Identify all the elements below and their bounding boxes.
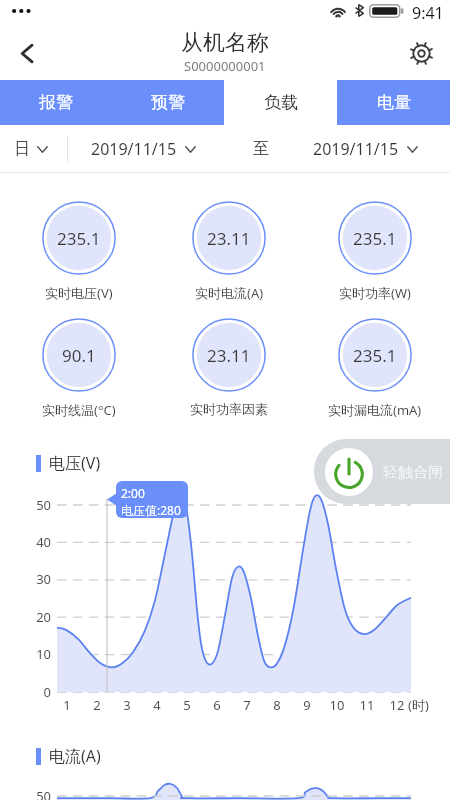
staticText: 实时功率(W) [339,284,411,302]
button[interactable]: Back [4,30,50,76]
staticText: 电压(V) [49,452,101,474]
staticText: 235.1 [57,227,101,250]
staticText: 50 [15,496,51,514]
staticText: 实时漏电流(mA) [328,401,422,419]
staticText: 0 [15,683,51,701]
staticText: 10 [327,696,347,714]
staticText: 11 [357,696,377,714]
staticText: 9:41 [412,2,444,24]
staticText: 1 [57,696,77,714]
staticText: 50 [15,787,51,800]
button[interactable]: Settings [400,32,442,74]
staticText: 从机名称 [181,29,269,57]
staticText: 电压值:280 [121,502,181,518]
staticText: 235.1 [353,344,397,367]
staticText: 报警 [39,92,73,113]
staticText: 2 [87,696,107,714]
staticText: 7 [237,696,257,714]
staticText: 日 [14,139,30,159]
staticText: 2:00 [121,485,145,501]
staticText: 6 [207,696,227,714]
button[interactable]: 轻触合闸 [314,439,450,504]
staticText: 3 [117,696,137,714]
staticText: 235.1 [353,227,397,250]
staticText: 电流(A) [49,745,101,767]
button[interactable]: 235.1 [338,201,412,275]
button[interactable]: 235.1 [42,201,116,275]
staticText: S0000000001 [184,57,266,75]
button[interactable]: 90.1 [42,318,116,392]
staticText: 5 [177,696,197,714]
staticText: (时) [408,696,429,714]
button[interactable]: 2019/11/15 [68,125,214,172]
button[interactable]: 电量 [337,80,450,125]
staticText: 12 [387,696,407,714]
staticText: 9 [297,696,317,714]
staticText: 40 [15,533,51,551]
staticText: 23.11 [207,344,251,367]
staticText: 电量 [377,92,411,113]
staticText: 23.11 [207,227,251,250]
staticText: 实时功率因素 [190,401,268,417]
staticText: 至 [253,139,269,159]
button[interactable]: 23.11 [192,201,266,275]
button[interactable]: 负载 [224,80,337,125]
staticText: 实时电压(V) [45,284,113,302]
button[interactable]: 23.11 [192,318,266,392]
staticText: 90.1 [62,344,96,367]
staticText: 实时电流(A) [195,284,264,302]
staticText: 预警 [151,92,185,113]
button[interactable]: 报警 [0,80,112,125]
staticText: 2019/11/15 [313,138,399,160]
button[interactable]: 日 [0,125,68,172]
staticText: 20 [15,608,51,626]
staticText: 2019/11/15 [91,138,177,160]
staticText: 8 [267,696,287,714]
staticText: 轻触合闸 [383,463,443,482]
staticText: 4 [147,696,167,714]
staticText: 负载 [264,92,298,113]
button[interactable]: 235.1 [338,318,412,392]
button[interactable]: 2019/11/15 [288,125,438,172]
button[interactable]: 预警 [112,80,224,125]
staticText: 30 [15,570,51,588]
staticText: 10 [15,645,51,663]
staticText: 实时线温(°C) [42,401,116,419]
